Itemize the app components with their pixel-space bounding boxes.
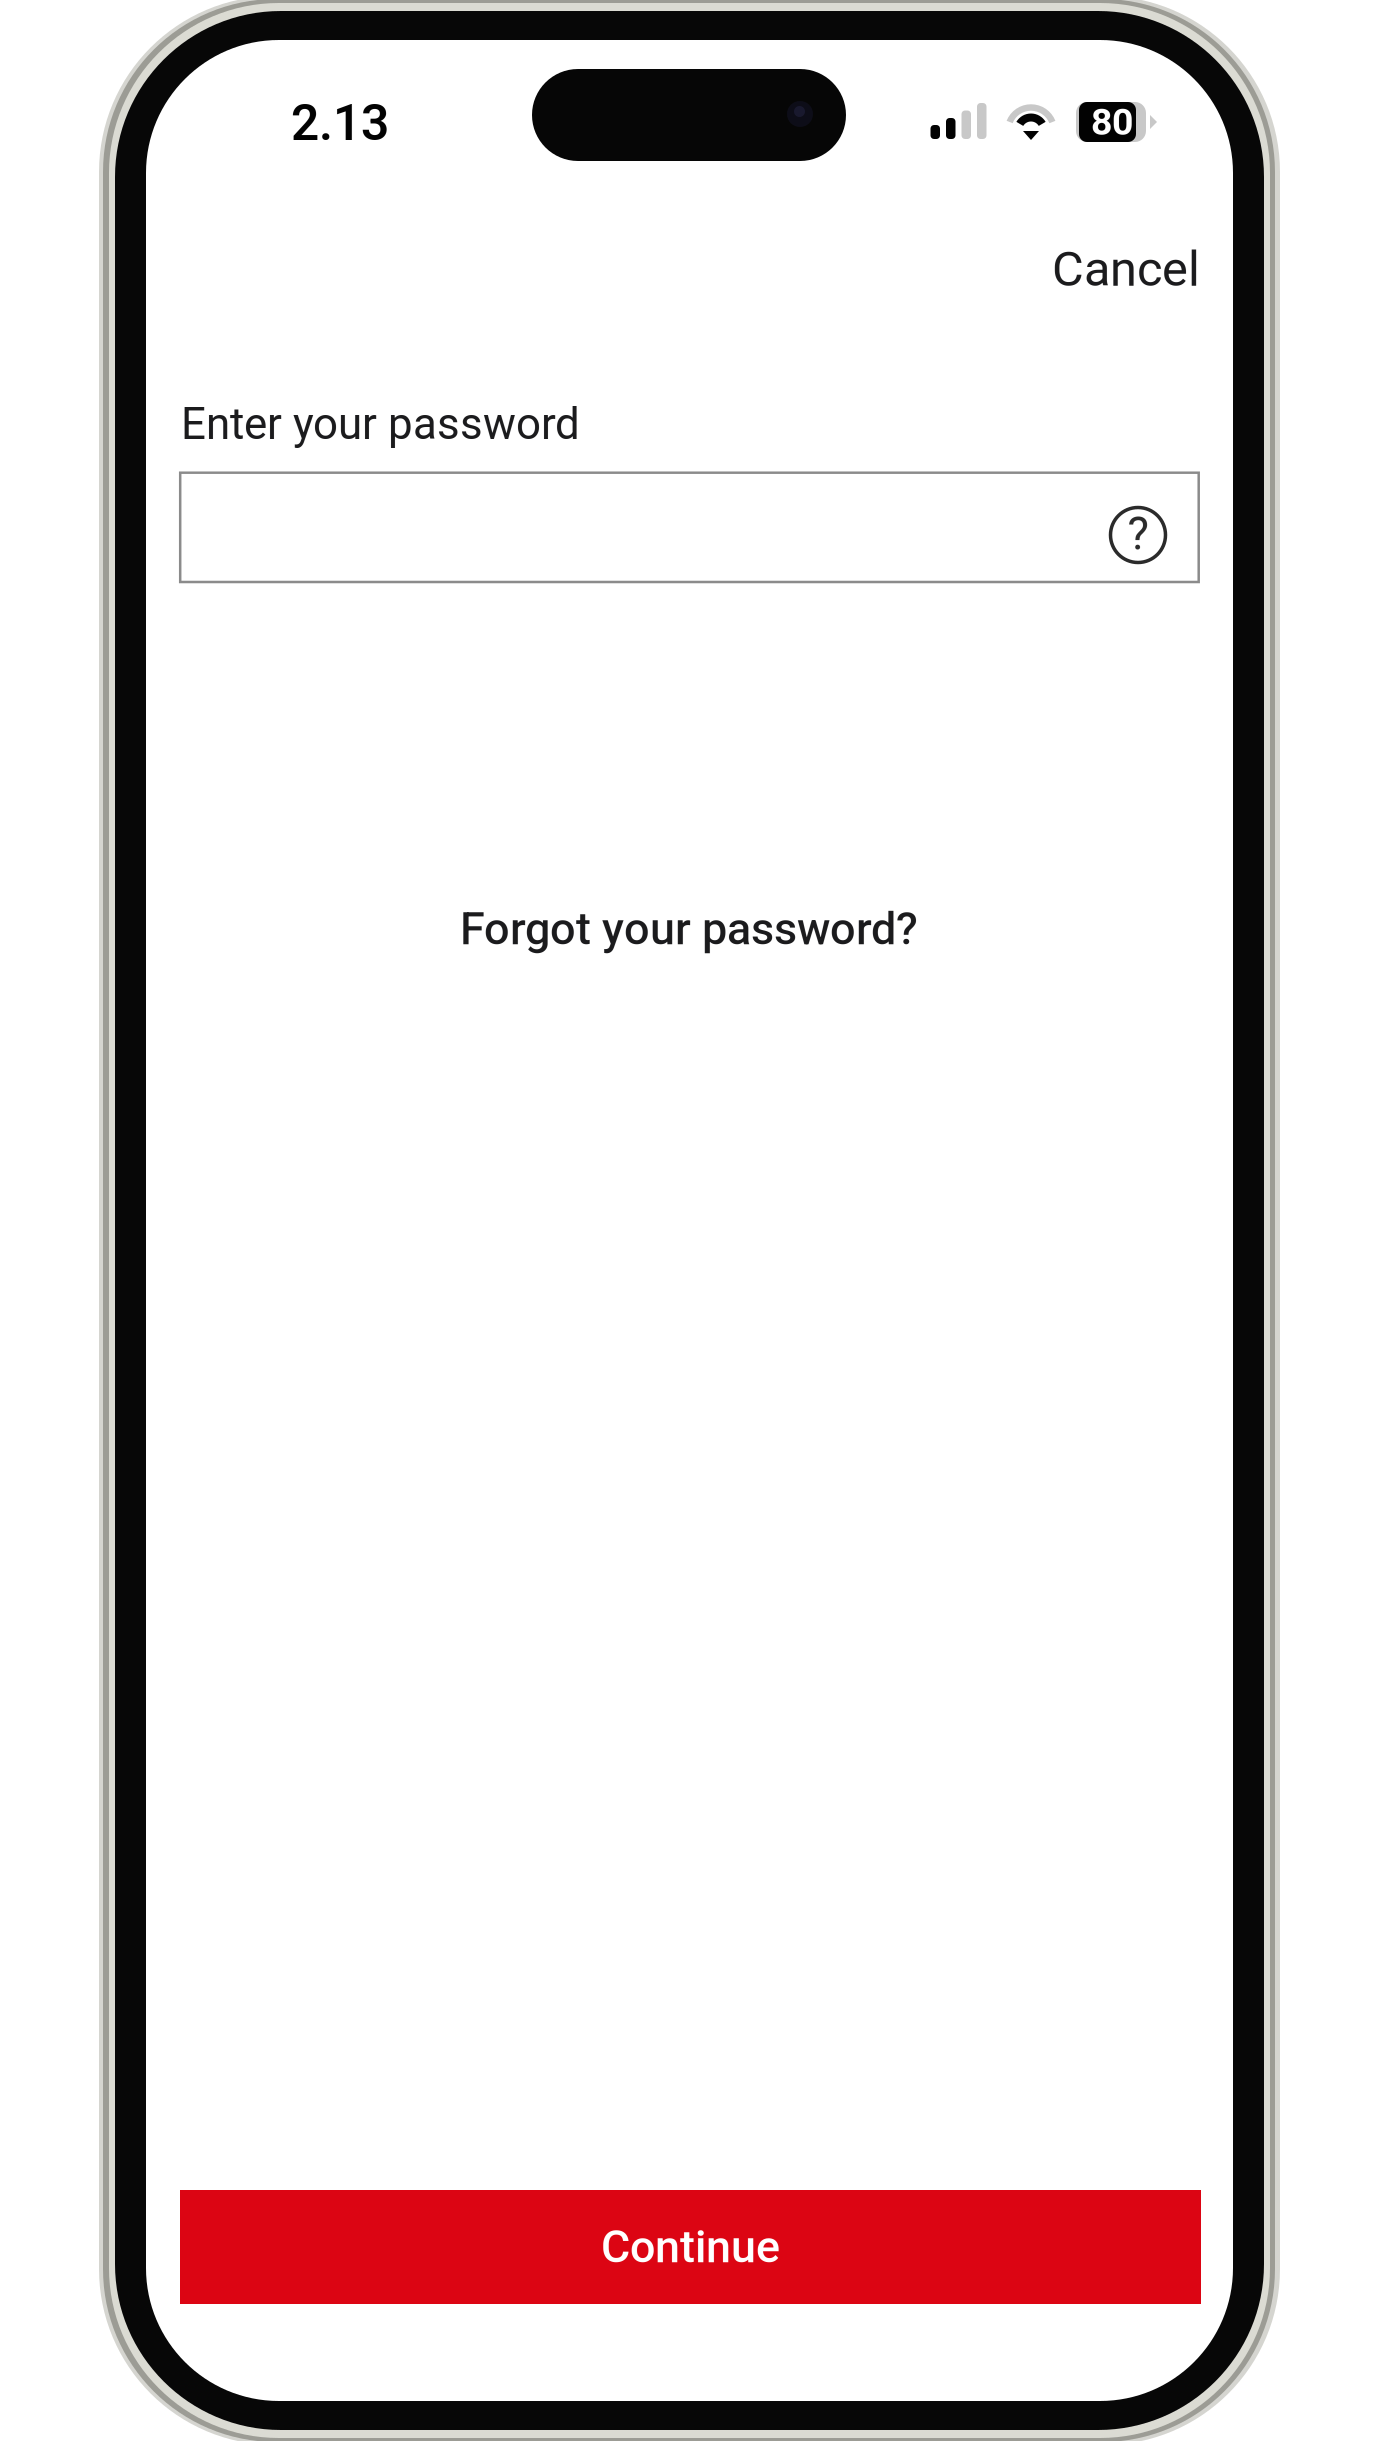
- button[interactable]: Continue: [180, 2190, 1201, 2304]
- button[interactable]: Forgot your password?: [429, 893, 949, 965]
- staticText: Cancel: [1052, 240, 1200, 297]
- staticText: 2.13: [291, 94, 389, 152]
- staticText: Continue: [601, 2221, 780, 2273]
- staticText: 80: [1091, 100, 1133, 144]
- staticText: Forgot your password?: [460, 903, 918, 955]
- button[interactable]: Enter your password: [180, 473, 1199, 582]
- staticText: ?: [1127, 507, 1148, 560]
- staticText: Enter your password: [181, 398, 580, 450]
- button[interactable]: Password help: [1100, 497, 1176, 573]
- button[interactable]: Cancel: [1010, 224, 1200, 314]
